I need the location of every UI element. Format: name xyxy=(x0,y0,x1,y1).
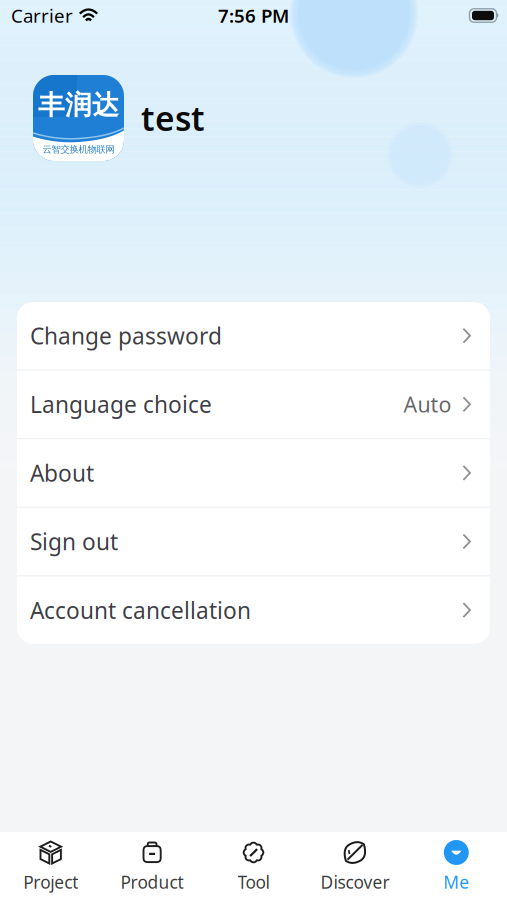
button[interactable]: Tool xyxy=(203,830,304,900)
button[interactable]: Account cancellation xyxy=(17,576,490,644)
staticText: Carrier xyxy=(11,3,73,28)
staticText: Change password xyxy=(30,321,222,351)
staticText: Account cancellation xyxy=(30,595,251,625)
staticText: Auto xyxy=(403,390,451,418)
button[interactable]: Language choice xyxy=(17,371,490,438)
staticText: test xyxy=(141,96,205,140)
staticText: 7:56 PM xyxy=(218,3,289,28)
button[interactable]: About xyxy=(17,439,490,507)
button[interactable]: Product xyxy=(101,830,203,900)
staticText: Language choice xyxy=(30,389,212,419)
staticText: 云智交换机物联网 xyxy=(42,143,114,155)
button[interactable]: Me xyxy=(406,830,507,900)
button[interactable]: Change password xyxy=(17,302,490,369)
staticText: Tool xyxy=(237,870,269,893)
button[interactable]: Discover xyxy=(304,830,406,900)
staticText: Project xyxy=(23,870,78,893)
staticText: Discover xyxy=(320,870,389,893)
staticText: Product xyxy=(121,870,184,893)
button[interactable]: Project xyxy=(0,830,101,900)
staticText: Me xyxy=(443,870,469,893)
staticText: 丰润达 xyxy=(38,89,119,121)
staticText: Sign out xyxy=(30,526,118,556)
staticText: About xyxy=(30,458,94,488)
button[interactable]: Sign out xyxy=(17,508,490,575)
